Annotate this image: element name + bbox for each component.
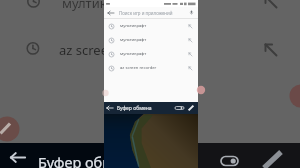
- staticText: Поиск игр и приложений: [119, 10, 173, 16]
- other: Back: [0, 143, 104, 168]
- button[interactable]: Back: [104, 7, 198, 18]
- staticText: Буфер обмена: [38, 152, 139, 168]
- other: Back: [106, 104, 114, 112]
- staticText: Буфер обмена: [117, 105, 152, 112]
- other: Back: [107, 9, 115, 17]
- button[interactable]: az screen recorder: [104, 61, 198, 75]
- staticText: мультикрафт: [120, 51, 147, 57]
- staticText: мультикрафт: [120, 23, 147, 29]
- other: Voice search: [188, 9, 195, 16]
- staticText: мултикр: [62, 0, 115, 12]
- other: Toggle: [175, 104, 184, 112]
- staticText: мультикрафт: [120, 37, 147, 43]
- button[interactable]: мультикрафт: [104, 33, 198, 47]
- button[interactable]: мультикрафт: [104, 47, 198, 61]
- button[interactable]: мультикрафт: [104, 19, 198, 33]
- staticText: az screen recorder: [120, 65, 157, 71]
- other: Edit: [187, 104, 195, 112]
- staticText: az scree: [59, 41, 109, 59]
- button[interactable]: Back: [104, 102, 198, 114]
- button[interactable]: Back: [0, 143, 104, 168]
